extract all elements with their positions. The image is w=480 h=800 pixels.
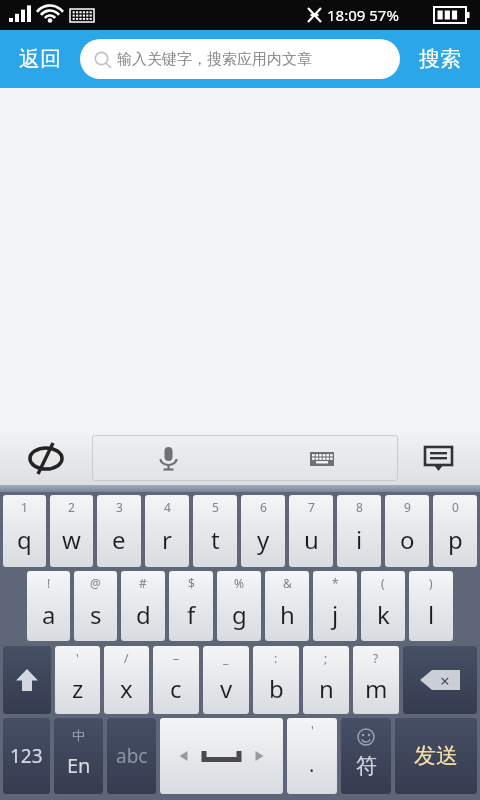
button[interactable]: 5 bbox=[193, 495, 237, 567]
button[interactable]: * bbox=[313, 571, 357, 641]
button[interactable]: Switch input method bbox=[0, 431, 92, 485]
staticText: k bbox=[377, 598, 390, 631]
staticText: 中 bbox=[72, 727, 85, 743]
staticText: 4 bbox=[164, 499, 171, 515]
button[interactable]: – bbox=[153, 646, 199, 714]
staticText: 3 bbox=[116, 499, 123, 515]
button[interactable]: & bbox=[265, 571, 309, 641]
staticText: d bbox=[136, 598, 151, 631]
button[interactable]: 7 bbox=[289, 495, 333, 567]
button[interactable]: 9 bbox=[385, 495, 429, 567]
staticText: . bbox=[309, 751, 315, 778]
staticText: r bbox=[162, 523, 172, 556]
staticText: s bbox=[90, 598, 102, 631]
button[interactable]: 符 bbox=[341, 718, 391, 794]
staticText: : bbox=[274, 650, 278, 666]
staticText: $ bbox=[188, 575, 195, 591]
staticText: e bbox=[112, 523, 126, 556]
button[interactable]: _ bbox=[203, 646, 249, 714]
staticText: 1 bbox=[21, 499, 28, 515]
staticText: l bbox=[428, 598, 435, 631]
staticText: ( bbox=[381, 575, 385, 591]
staticText: 5 bbox=[212, 499, 219, 515]
button[interactable]: 搜索 bbox=[400, 30, 480, 88]
staticText: q bbox=[17, 523, 32, 556]
staticText: 2 bbox=[68, 499, 75, 515]
staticText: b bbox=[269, 672, 284, 705]
staticText: a bbox=[42, 598, 56, 631]
staticText: x bbox=[120, 672, 133, 705]
button[interactable]: 返回 bbox=[0, 30, 80, 88]
button[interactable]: Shift bbox=[3, 646, 51, 714]
button[interactable]: 输入关键字，搜索应用内文章 bbox=[80, 39, 400, 79]
staticText: @ bbox=[90, 575, 101, 591]
button[interactable]: 8 bbox=[337, 495, 381, 567]
staticText: ! bbox=[47, 575, 51, 591]
button[interactable]: % bbox=[217, 571, 261, 641]
button[interactable]: ? bbox=[353, 646, 399, 714]
staticText: p bbox=[448, 523, 463, 556]
button[interactable]: ' bbox=[55, 646, 100, 714]
staticText: ) bbox=[429, 575, 433, 591]
staticText: c bbox=[170, 672, 182, 705]
staticText: En bbox=[67, 752, 91, 779]
button[interactable]: abc bbox=[107, 718, 156, 794]
button[interactable]: Space bbox=[160, 718, 283, 794]
staticText: y bbox=[257, 523, 270, 556]
button[interactable]: $ bbox=[169, 571, 213, 641]
staticText: m bbox=[365, 672, 388, 705]
staticText: 8 bbox=[356, 499, 363, 515]
staticText: 发送 bbox=[414, 742, 458, 770]
button[interactable]: : bbox=[253, 646, 299, 714]
staticText: 7 bbox=[308, 499, 315, 515]
button[interactable]: Hide keyboard bbox=[398, 431, 480, 485]
button[interactable]: ' bbox=[287, 718, 337, 794]
staticText: 0 bbox=[452, 499, 459, 515]
button[interactable]: 123 bbox=[3, 718, 50, 794]
staticText: o bbox=[400, 523, 415, 556]
staticText: abc bbox=[116, 743, 148, 769]
staticText: ? bbox=[373, 650, 379, 666]
staticText: n bbox=[319, 672, 334, 705]
button[interactable]: 中 bbox=[54, 718, 103, 794]
button[interactable]: ! bbox=[27, 571, 70, 641]
button[interactable]: # bbox=[121, 571, 165, 641]
staticText: t bbox=[211, 523, 220, 556]
button[interactable]: 1 bbox=[3, 495, 46, 567]
button[interactable]: Keyboard layout bbox=[245, 435, 398, 481]
staticText: × bbox=[440, 669, 450, 692]
staticText: u bbox=[304, 523, 319, 556]
staticText: 6 bbox=[260, 499, 267, 515]
staticText: 123 bbox=[10, 743, 43, 769]
button[interactable]: 6 bbox=[241, 495, 285, 567]
button[interactable]: @ bbox=[74, 571, 117, 641]
staticText: f bbox=[187, 598, 196, 631]
button[interactable]: 3 bbox=[97, 495, 141, 567]
button[interactable]: Backspace bbox=[403, 646, 477, 714]
staticText: / bbox=[124, 650, 129, 666]
button[interactable]: ( bbox=[361, 571, 405, 641]
staticText: 搜索 bbox=[419, 46, 461, 72]
staticText: ' bbox=[76, 650, 79, 666]
button[interactable]: Voice input bbox=[92, 435, 245, 481]
staticText: % bbox=[234, 575, 244, 591]
button[interactable]: 4 bbox=[145, 495, 189, 567]
staticText: v bbox=[220, 672, 233, 705]
button[interactable]: ; bbox=[303, 646, 349, 714]
staticText: 返回 bbox=[19, 46, 61, 72]
staticText: w bbox=[62, 523, 81, 556]
staticText: i bbox=[356, 523, 363, 556]
button[interactable]: 发送 bbox=[395, 718, 477, 794]
staticText: 输入关键字，搜索应用内文章 bbox=[117, 50, 312, 69]
staticText: & bbox=[283, 575, 292, 591]
staticText: j bbox=[332, 598, 339, 631]
staticText: 18:09 57% bbox=[327, 5, 399, 25]
staticText: ; bbox=[324, 650, 328, 666]
button[interactable]: 2 bbox=[50, 495, 93, 567]
staticText: – bbox=[173, 650, 180, 666]
button[interactable]: ) bbox=[409, 571, 453, 641]
button[interactable]: 0 bbox=[433, 495, 477, 567]
button[interactable]: / bbox=[104, 646, 149, 714]
staticText: z bbox=[72, 672, 84, 705]
staticText: g bbox=[232, 598, 247, 631]
